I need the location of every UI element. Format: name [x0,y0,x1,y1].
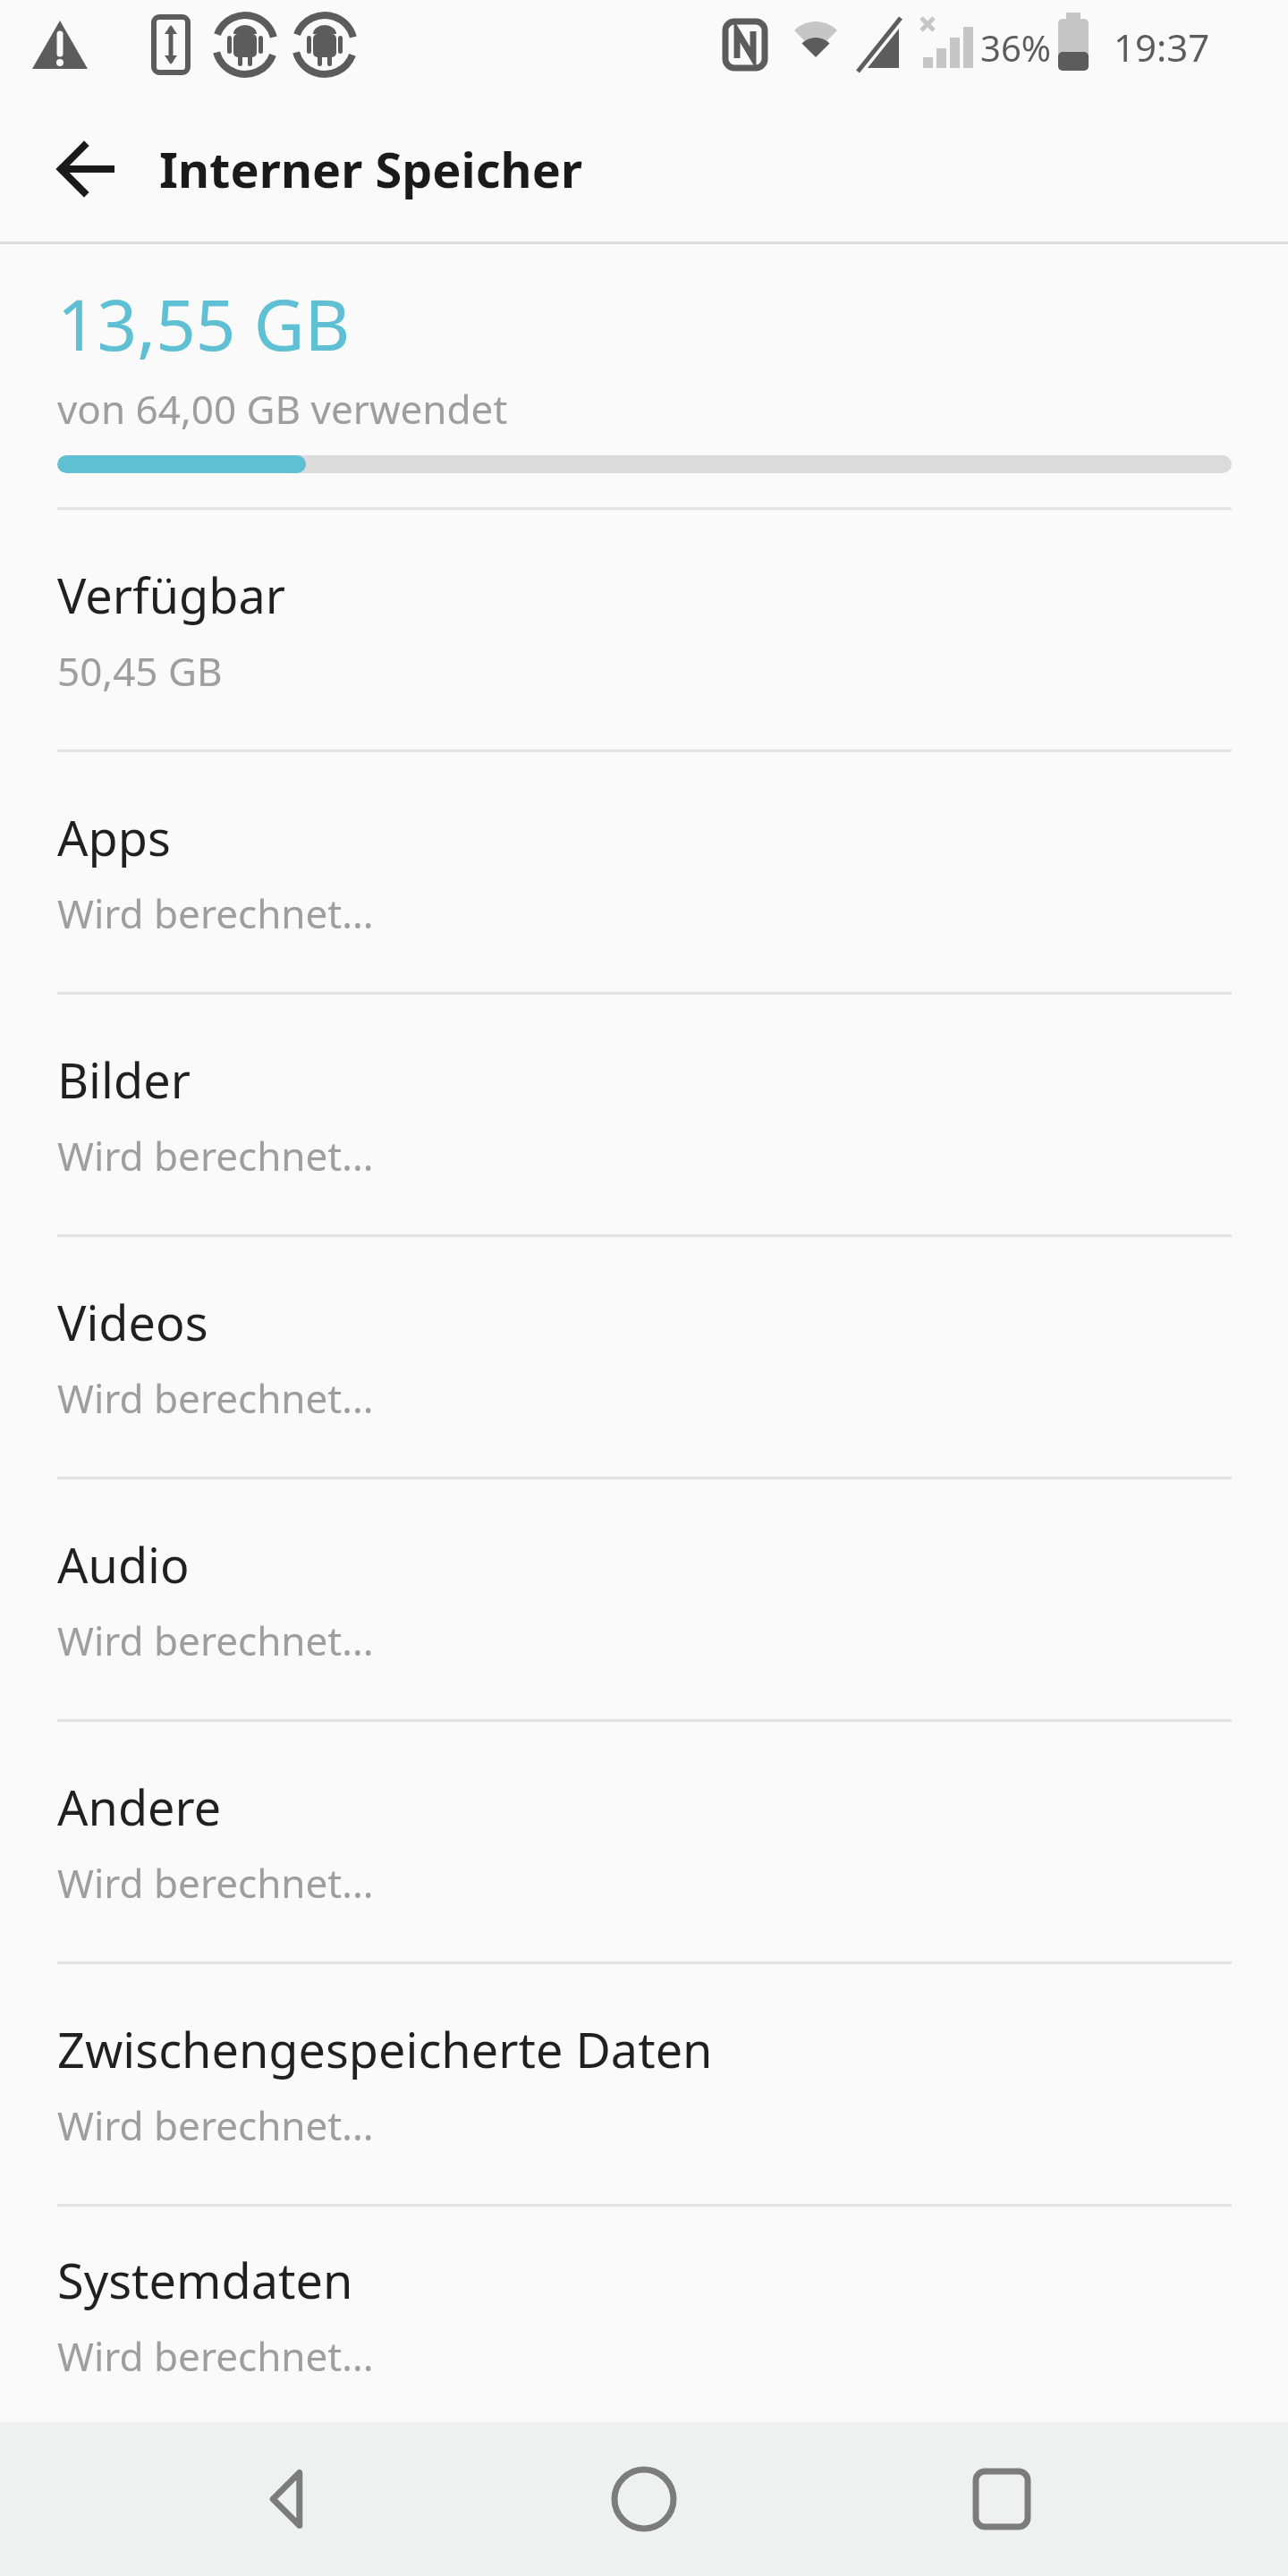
staticText: 19:37 [1114,21,1210,72]
staticText: Wird berechnet... [57,1856,374,1910]
staticText: Wird berechnet... [57,2329,374,2383]
staticText: 50,45 GB [57,644,223,698]
button[interactable]: Bilder [0,995,1288,1234]
staticText: Wird berechnet... [57,1614,374,1667]
staticText: Systemdaten [57,2247,353,2313]
staticText: Wird berechnet... [57,1129,374,1182]
button[interactable]: Übersicht [930,2428,1073,2571]
staticText: von 64,00 GB verwendet [57,382,508,436]
staticText: Wird berechnet... [57,1371,374,1425]
staticText: Andere [57,1774,222,1840]
button[interactable]: Zwischengespeicherte Daten [0,1964,1288,2204]
staticText: Videos [57,1289,208,1355]
staticText: Wird berechnet... [57,886,374,940]
staticText: Zwischengespeicherte Daten [57,2016,713,2082]
button[interactable]: Zurück [215,2428,358,2571]
staticText: 13,55 GB [57,276,351,371]
staticText: Audio [57,1531,190,1597]
button[interactable]: Andere [0,1722,1288,1962]
button[interactable]: Apps [0,752,1288,992]
button[interactable]: Verfügbar [0,510,1288,750]
button[interactable]: Startbildschirm [572,2428,716,2571]
staticText: Interner Speicher [159,136,583,202]
staticText: Apps [57,804,171,870]
button[interactable]: Systemdaten [0,2207,1288,2422]
button[interactable]: Videos [0,1237,1288,1477]
staticText: 36% [980,23,1051,72]
staticText: Verfügbar [57,562,286,628]
button[interactable]: Zurück [38,120,136,218]
button[interactable]: Audio [0,1479,1288,1719]
button[interactable]: 13,55 GB [0,244,1288,507]
staticText: Wird berechnet... [57,2098,374,2152]
staticText: Bilder [57,1046,191,1113]
